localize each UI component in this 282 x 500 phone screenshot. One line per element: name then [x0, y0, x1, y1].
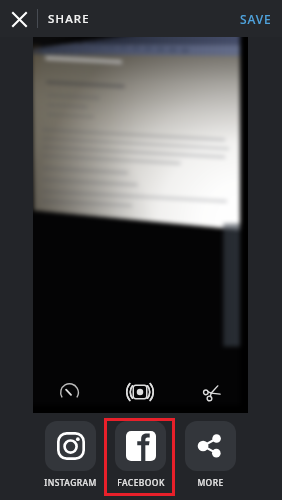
- button[interactable]: SAVE: [232, 0, 280, 37]
- button[interactable]: Close: [4, 4, 34, 34]
- staticText: SHARE: [48, 11, 90, 27]
- button[interactable]: Stabilize: [125, 377, 155, 407]
- button[interactable]: MORE: [177, 421, 244, 489]
- staticText: FACEBOOK: [117, 477, 165, 489]
- button[interactable]: FACEBOOK: [107, 421, 174, 489]
- staticText: MORE: [197, 477, 224, 489]
- button[interactable]: INSTAGRAM: [37, 421, 104, 489]
- staticText: INSTAGRAM: [44, 477, 97, 489]
- button[interactable]: Trim: [197, 377, 227, 407]
- button[interactable]: Speed: [54, 377, 84, 407]
- staticText: SAVE: [240, 11, 272, 27]
